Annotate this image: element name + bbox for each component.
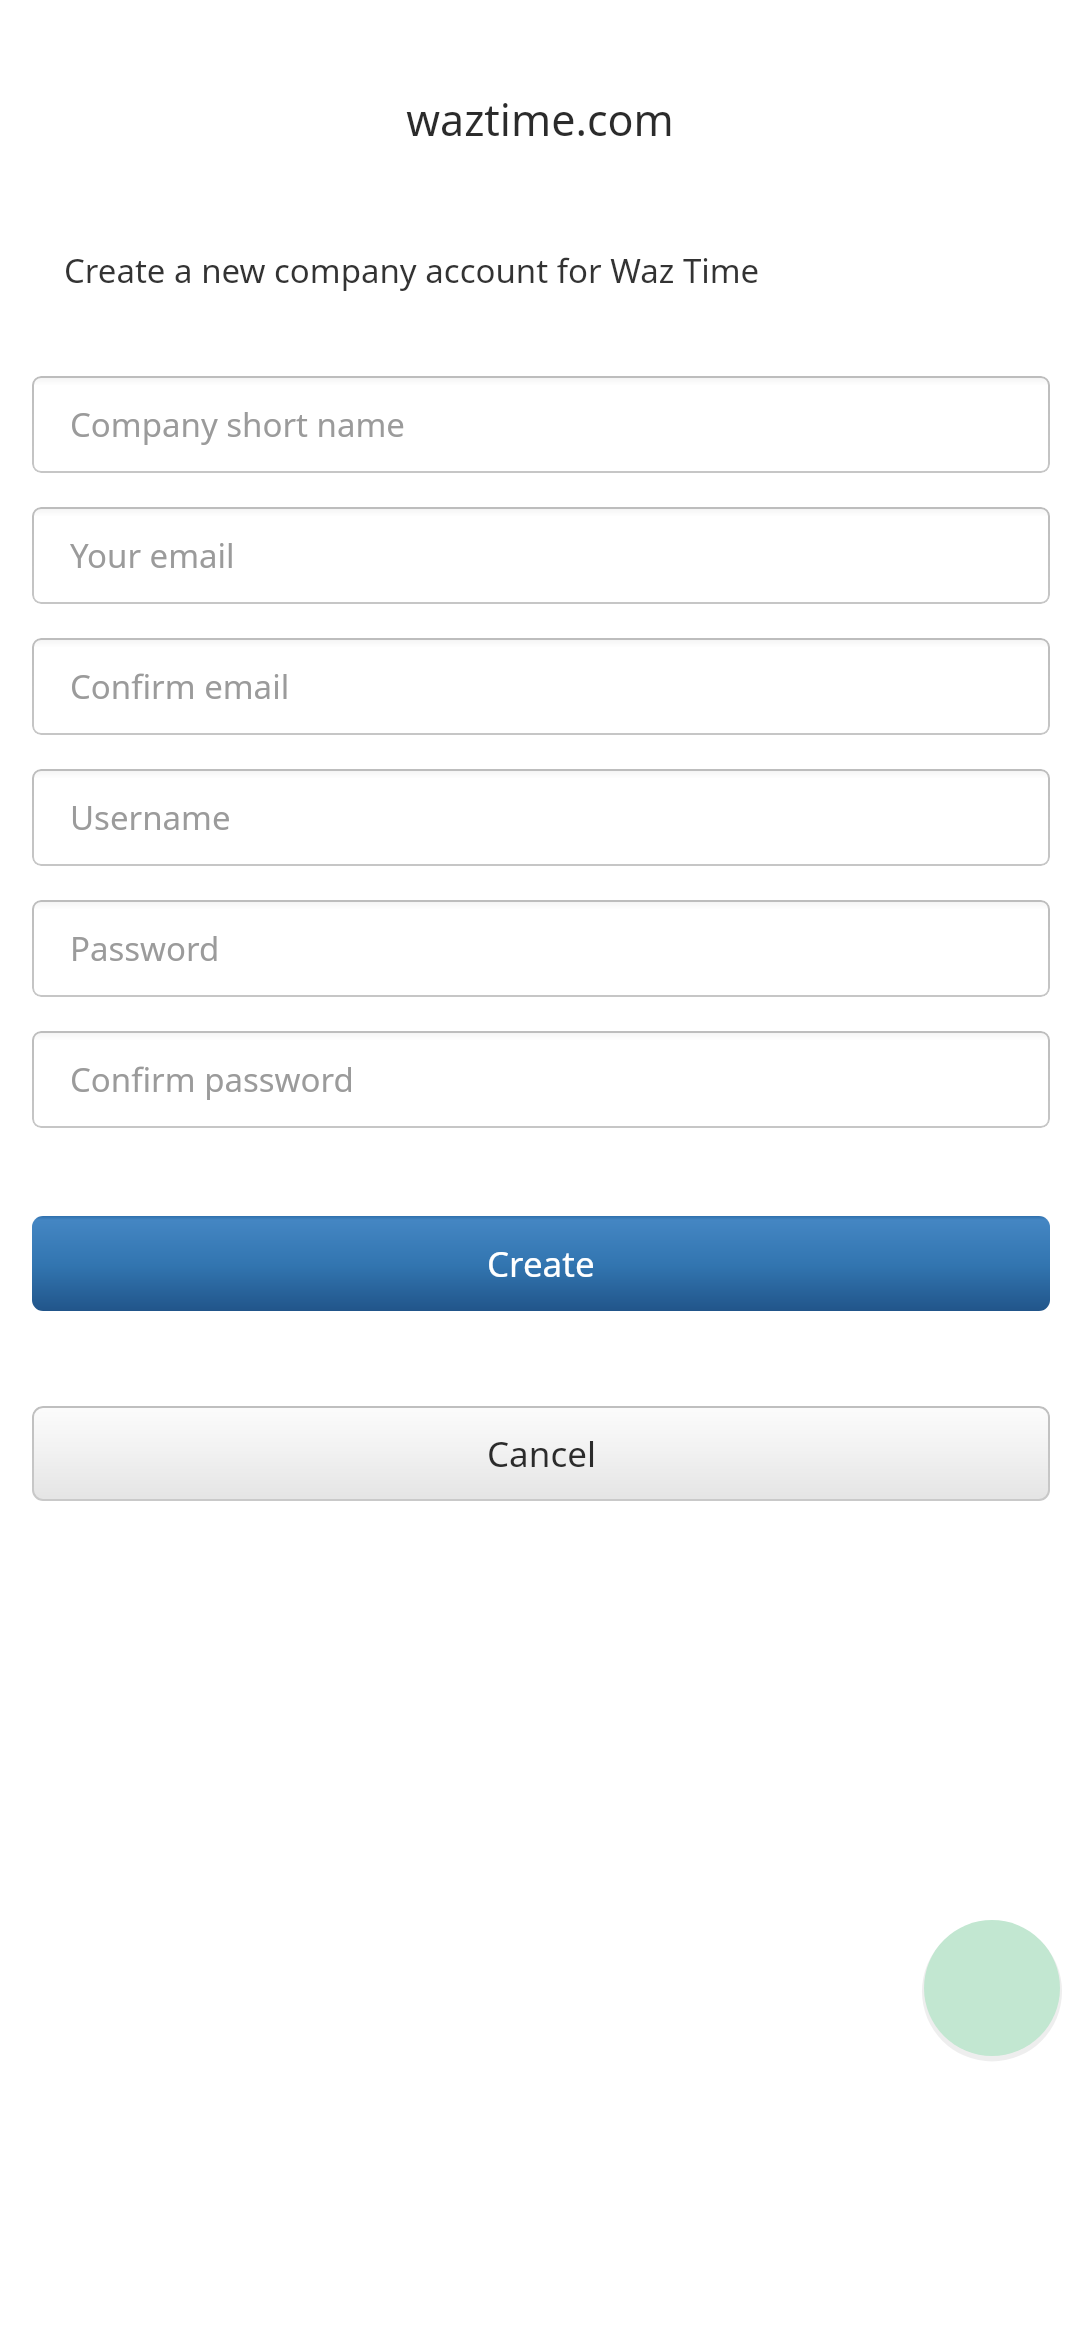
staticText: Confirm email <box>70 664 290 709</box>
button[interactable]: Confirm password <box>32 1031 1050 1128</box>
staticText: Create a new company account for Waz Tim… <box>64 248 760 293</box>
staticText: Password <box>70 926 220 971</box>
staticText: Company short name <box>70 402 405 447</box>
button[interactable]: Username <box>32 769 1050 866</box>
staticText: Create <box>487 1240 595 1288</box>
staticText: waztime.com <box>0 90 1080 149</box>
staticText: Your email <box>70 533 235 578</box>
button[interactable]: Create <box>32 1216 1050 1311</box>
staticText: Cancel <box>487 1430 596 1478</box>
staticText: Username <box>70 795 231 840</box>
button[interactable]: Company short name <box>32 376 1050 473</box>
button[interactable]: Cancel <box>32 1406 1050 1501</box>
staticText: Confirm password <box>70 1057 354 1102</box>
button[interactable]: Password <box>32 900 1050 997</box>
button[interactable]: Confirm email <box>32 638 1050 735</box>
button[interactable]: Action <box>924 1920 1060 2056</box>
button[interactable]: Your email <box>32 507 1050 604</box>
